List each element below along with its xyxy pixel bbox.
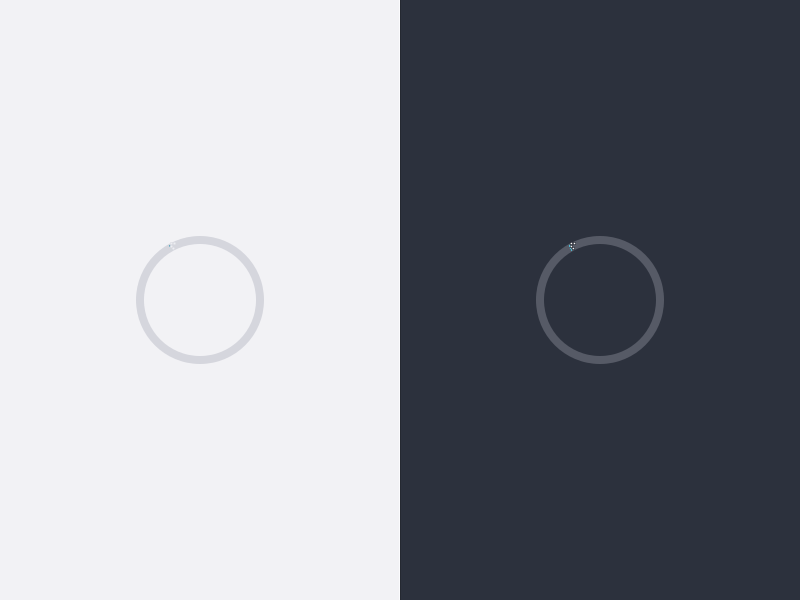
button[interactable]: Loading: [536, 236, 664, 364]
button[interactable]: Loading: [136, 236, 264, 364]
